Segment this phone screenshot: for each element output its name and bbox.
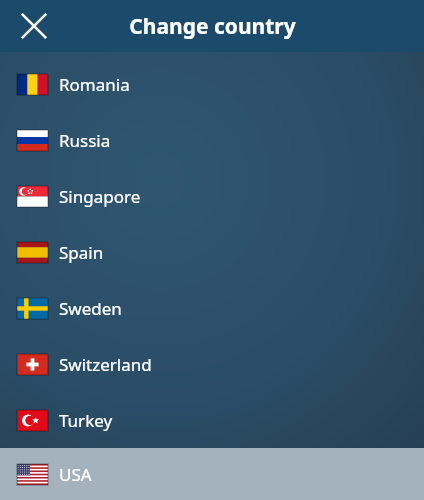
button[interactable]: Sweden [0, 280, 424, 336]
staticText: Romania [59, 73, 130, 96]
button[interactable]: USA [0, 448, 424, 500]
staticText: USA [59, 463, 92, 486]
staticText: Singapore [59, 185, 141, 208]
button[interactable]: Spain [0, 224, 424, 280]
button[interactable]: Russia [0, 112, 424, 168]
button[interactable]: Close [13, 5, 55, 47]
staticText: Spain [59, 241, 104, 264]
button[interactable]: Turkey [0, 392, 424, 448]
staticText: Sweden [59, 297, 122, 320]
button[interactable]: Singapore [0, 168, 424, 224]
staticText: Switzerland [59, 353, 152, 376]
button[interactable]: Switzerland [0, 336, 424, 392]
button[interactable]: Romania [0, 56, 424, 112]
staticText: Change country [129, 12, 296, 41]
staticText: Turkey [59, 409, 113, 432]
staticText: Russia [59, 129, 111, 152]
